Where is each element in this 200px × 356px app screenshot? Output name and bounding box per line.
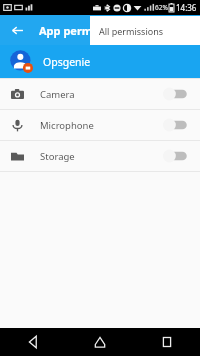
staticText: Storage [40,150,75,163]
staticText: Microphone [40,119,94,132]
staticText: Opsgenie [43,55,91,69]
staticText: Camera [40,88,75,101]
button[interactable]: Navigate up [6,19,28,41]
button[interactable]: All permissions [90,16,200,45]
button[interactable]: Storage [0,141,200,171]
staticText: App permissions [39,23,130,38]
staticText: 14:36 [176,2,197,13]
button[interactable]: Camera permission toggle [160,84,190,104]
button[interactable]: Camera [0,79,200,109]
button[interactable]: Storage permission toggle [160,146,190,166]
button[interactable]: Microphone [0,110,200,140]
staticText: All permissions [99,25,164,37]
staticText: 62% [155,3,168,12]
button[interactable]: Recent apps [133,328,200,356]
button[interactable]: Home [66,328,133,356]
button[interactable]: Microphone permission toggle [160,115,190,135]
button[interactable]: Opsgenie [0,45,200,78]
button[interactable]: Back [0,328,66,356]
